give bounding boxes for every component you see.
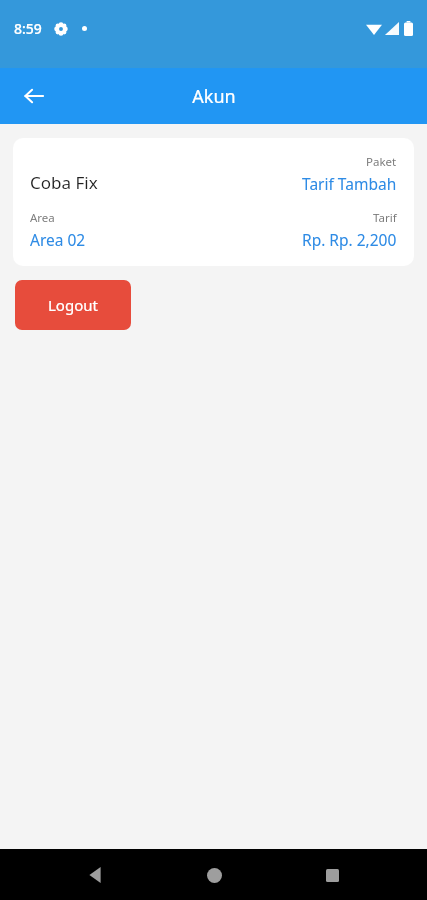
staticText: 8:59 — [14, 19, 42, 38]
staticText: Rp. Rp. 2,200 — [302, 229, 397, 250]
button[interactable]: Home — [190, 851, 238, 899]
staticText: Logout — [48, 295, 98, 315]
button[interactable]: Logout — [15, 280, 131, 330]
staticText: Coba Fix — [30, 171, 302, 194]
staticText: Area — [30, 210, 55, 226]
button[interactable]: Coba Fix — [13, 138, 414, 266]
staticText: Akun — [192, 84, 236, 109]
button[interactable]: Back — [71, 851, 119, 899]
staticText: Paket — [366, 154, 397, 170]
staticText: Tarif Tambah — [302, 173, 397, 194]
button[interactable]: Recent apps — [308, 851, 356, 899]
button[interactable]: Back — [10, 72, 58, 120]
staticText: Tarif — [373, 210, 397, 226]
staticText: Area 02 — [30, 229, 86, 250]
